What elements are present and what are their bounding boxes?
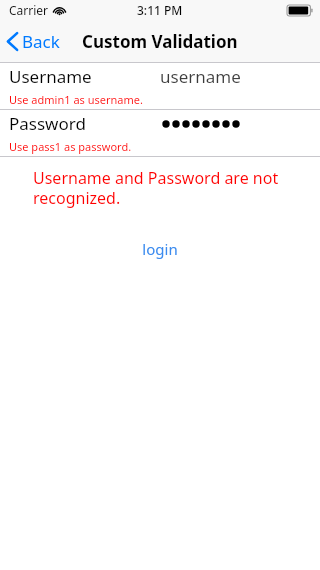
staticText: login (142, 239, 178, 259)
staticText: Custom Validation (82, 30, 238, 53)
staticText: Password (9, 112, 86, 135)
button[interactable]: Username (0, 63, 320, 90)
button[interactable]: Password (0, 110, 320, 137)
staticText: Use admin1 as username. (9, 92, 143, 107)
button[interactable]: Back (0, 24, 68, 59)
staticText: 3:11 PM (137, 2, 183, 18)
button[interactable]: login (130, 235, 190, 263)
staticText: Back (22, 30, 60, 53)
staticText: username (160, 65, 241, 88)
staticText: Use pass1 as password. (9, 139, 132, 154)
staticText: Carrier (9, 2, 49, 18)
staticText: Username (9, 65, 92, 88)
staticText: Username and Password are not recognized… (33, 167, 292, 208)
